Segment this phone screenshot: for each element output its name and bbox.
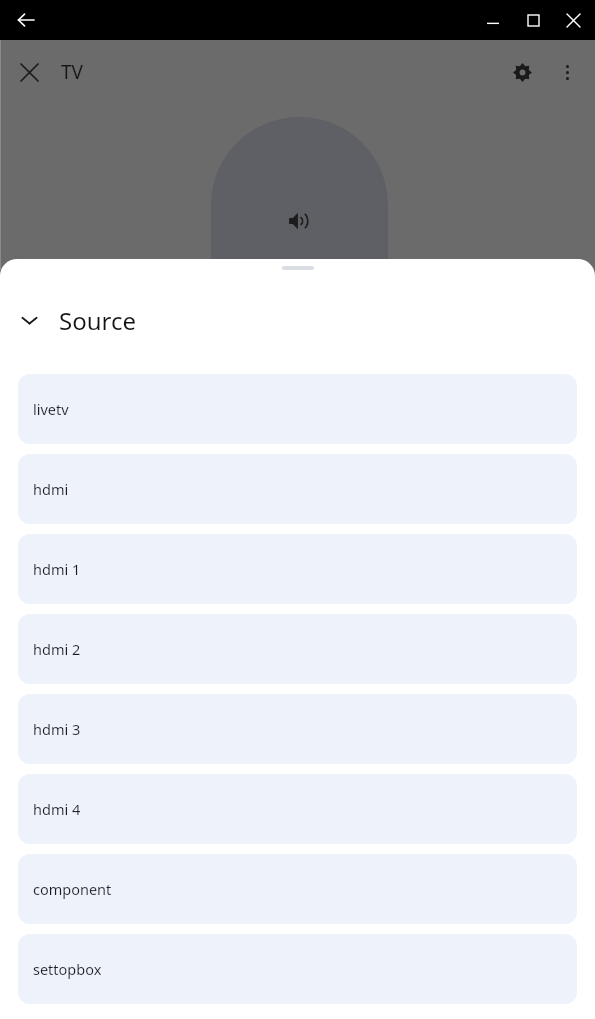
button[interactable]: Minimize: [473, 0, 513, 40]
staticText: hdmi 3: [33, 719, 81, 739]
button[interactable]: Maximize: [513, 0, 553, 40]
staticText: TV: [61, 59, 83, 85]
button[interactable]: livetv: [18, 374, 577, 444]
staticText: hdmi 1: [33, 559, 81, 579]
staticText: settopbox: [33, 959, 102, 979]
button[interactable]: hdmi: [18, 454, 577, 524]
other: Collapse: [13, 304, 45, 336]
button[interactable]: Close window: [553, 0, 593, 40]
button[interactable]: component: [18, 854, 577, 924]
button[interactable]: Close: [7, 50, 51, 94]
staticText: hdmi 4: [33, 799, 81, 819]
button[interactable]: hdmi 1: [18, 534, 577, 604]
staticText: hdmi 2: [33, 639, 81, 659]
button[interactable]: Collapse: [0, 294, 595, 346]
button[interactable]: Back: [6, 0, 46, 40]
button[interactable]: Settings: [499, 49, 545, 95]
button[interactable]: hdmi 2: [18, 614, 577, 684]
staticText: Source: [59, 304, 137, 337]
button[interactable]: hdmi 4: [18, 774, 577, 844]
button[interactable]: hdmi 3: [18, 694, 577, 764]
button[interactable]: More options: [545, 50, 589, 94]
staticText: hdmi: [33, 479, 69, 499]
staticText: component: [33, 879, 112, 899]
staticText: livetv: [33, 399, 69, 419]
button[interactable]: settopbox: [18, 934, 577, 1004]
